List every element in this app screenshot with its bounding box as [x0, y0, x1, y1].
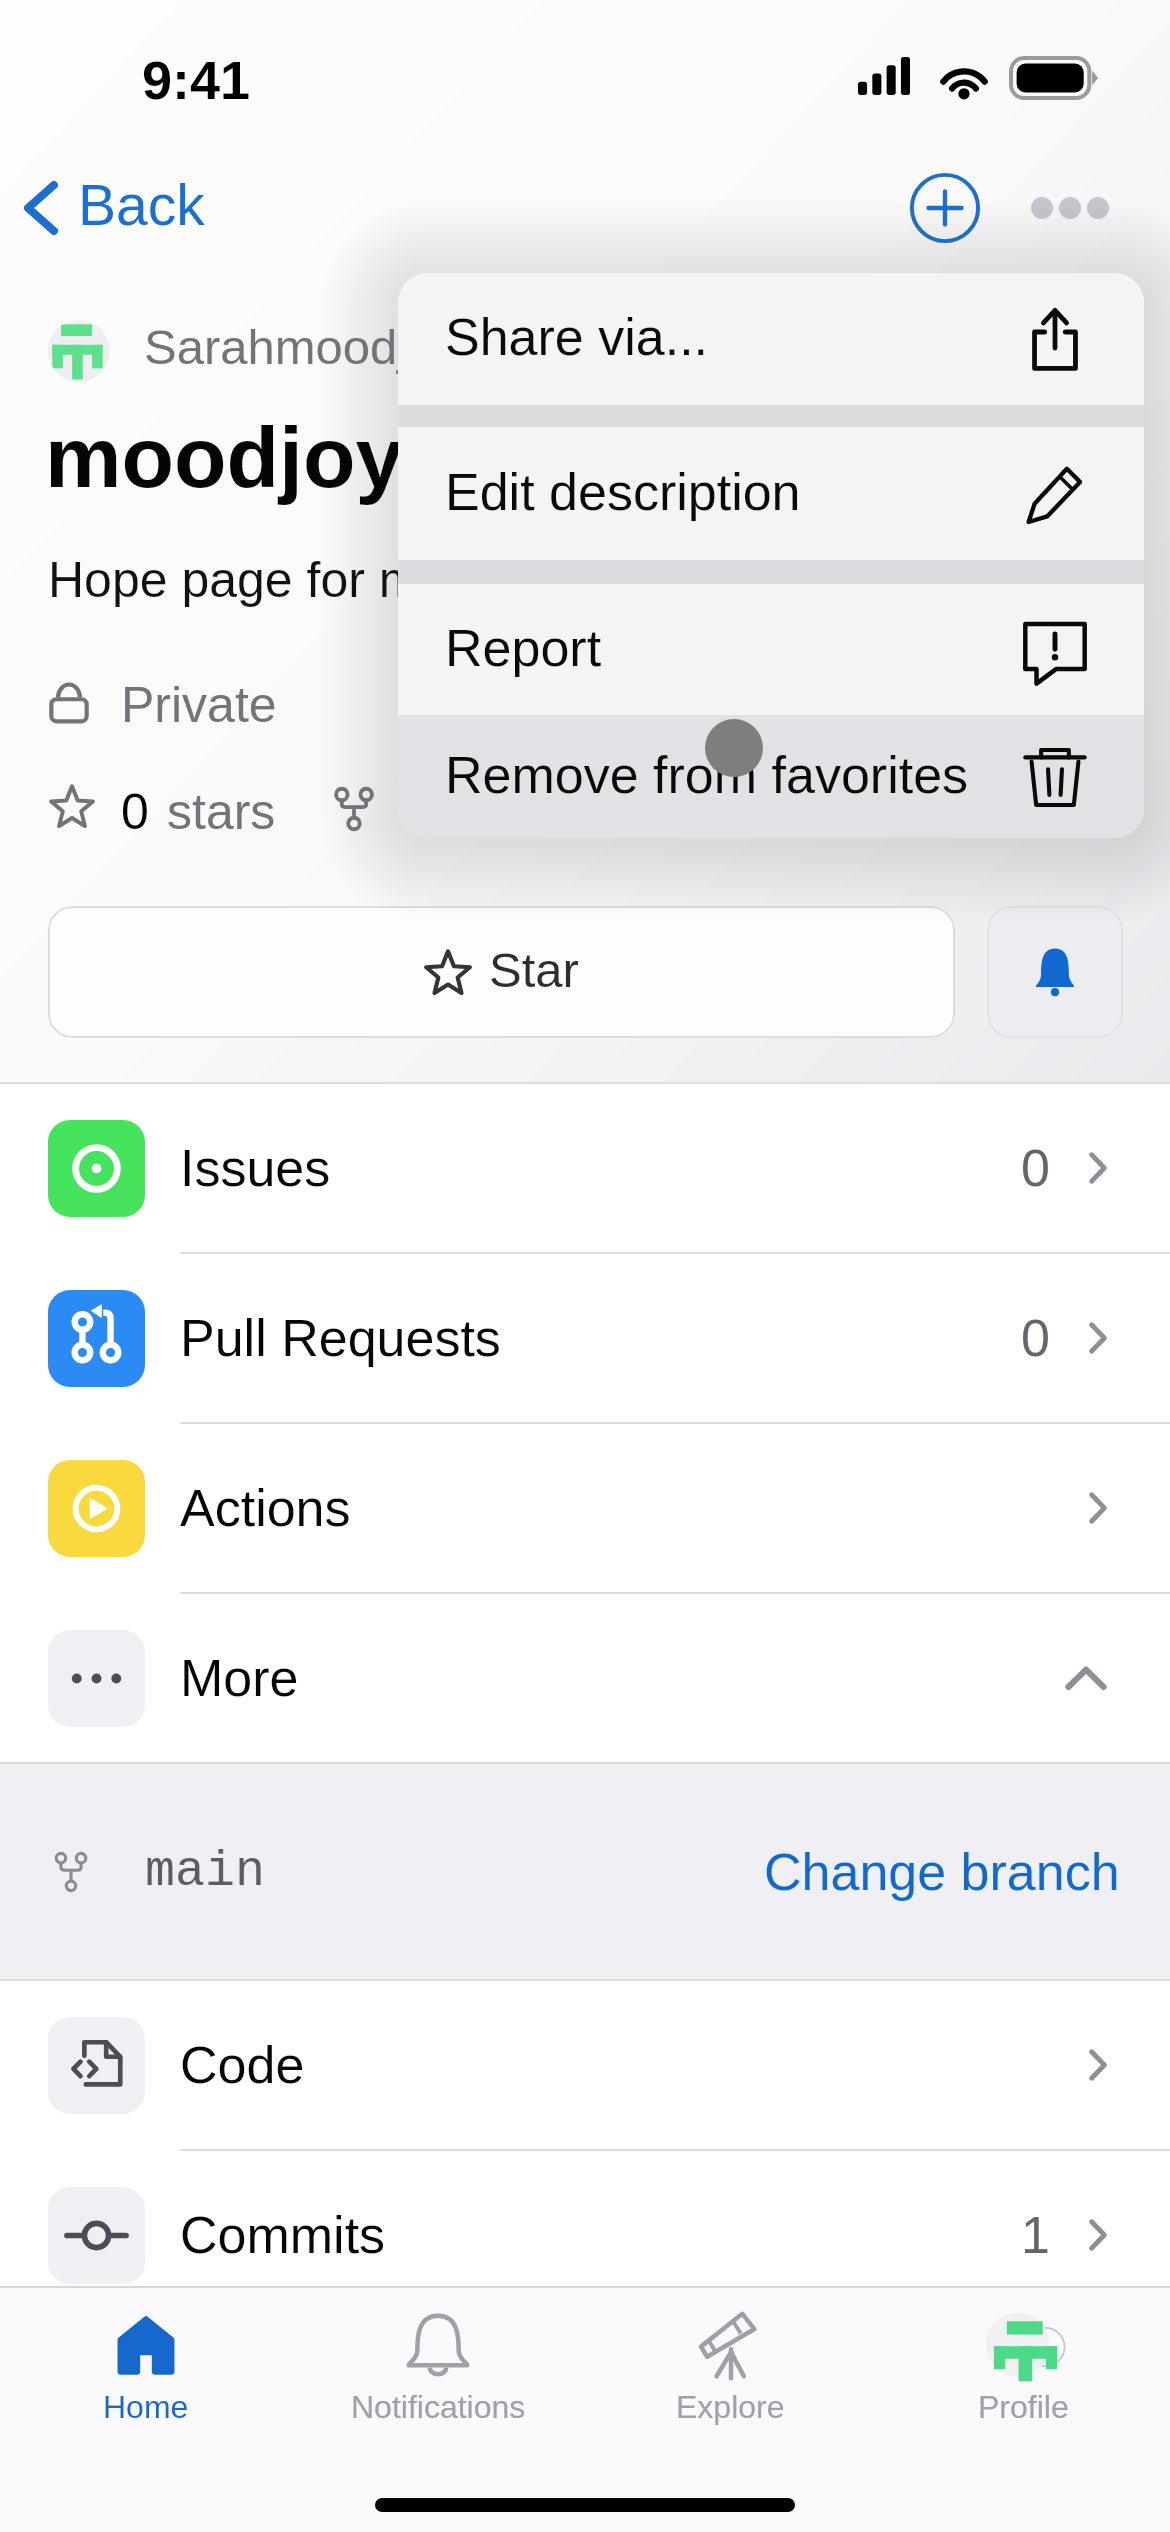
button[interactable]: Explore	[584, 2288, 877, 2532]
staticText: Edit description	[445, 463, 801, 521]
staticText: Back	[78, 173, 205, 237]
button[interactable]: Commits	[0, 2151, 1170, 2319]
button[interactable]: Change branch	[764, 1843, 1120, 1901]
button[interactable]: Watch	[987, 906, 1123, 1038]
staticText: Notifications	[351, 2389, 526, 2425]
staticText: Actions	[180, 1479, 351, 1537]
staticText: 0	[1021, 1139, 1050, 1197]
staticText: Sarahmoodjoy	[144, 320, 460, 375]
staticText: 9:41	[142, 50, 251, 110]
staticText: Profile	[978, 2389, 1069, 2425]
button[interactable]: Pull Requests	[0, 1254, 1170, 1422]
staticText: More	[180, 1649, 299, 1707]
staticText: Private	[121, 677, 277, 733]
button[interactable]: Notifications	[292, 2288, 584, 2532]
staticText: moodjoyblog	[45, 409, 585, 505]
button[interactable]: Share via...	[398, 273, 1144, 405]
button[interactable]: Back	[20, 163, 205, 253]
button[interactable]: Edit description	[398, 427, 1144, 560]
button[interactable]: Code	[0, 1981, 1170, 2149]
staticText: Code	[180, 2036, 305, 2094]
staticText: Issues	[180, 1139, 331, 1197]
button[interactable]: Issues	[0, 1084, 1170, 1252]
button[interactable]: More options	[1020, 163, 1120, 253]
staticText: Pull Requests	[180, 1309, 501, 1367]
button[interactable]: Actions	[0, 1424, 1170, 1592]
staticText: main	[145, 1843, 266, 1900]
button[interactable]: Star	[48, 906, 955, 1038]
button[interactable]: Report	[398, 584, 1144, 715]
staticText: Report	[445, 619, 602, 677]
staticText: Commits	[180, 2206, 386, 2264]
staticText: 0	[121, 784, 149, 840]
button[interactable]: More	[0, 1594, 1170, 1762]
staticText: stars	[167, 784, 276, 840]
button[interactable]: Home	[0, 2288, 292, 2532]
staticText: Remove from favorites	[445, 746, 969, 804]
staticText: Home	[103, 2389, 189, 2425]
staticText: Hope page for moodjoy	[48, 552, 568, 608]
button[interactable]: Add	[900, 163, 990, 253]
staticText: Explore	[676, 2389, 785, 2425]
button[interactable]: Profile	[877, 2288, 1170, 2532]
staticText: 0	[1021, 1309, 1050, 1367]
staticText: Share via...	[445, 308, 709, 366]
staticText: 1	[1021, 2206, 1050, 2264]
staticText: Star	[489, 943, 579, 998]
button[interactable]: Remove from favorites	[398, 715, 1144, 838]
